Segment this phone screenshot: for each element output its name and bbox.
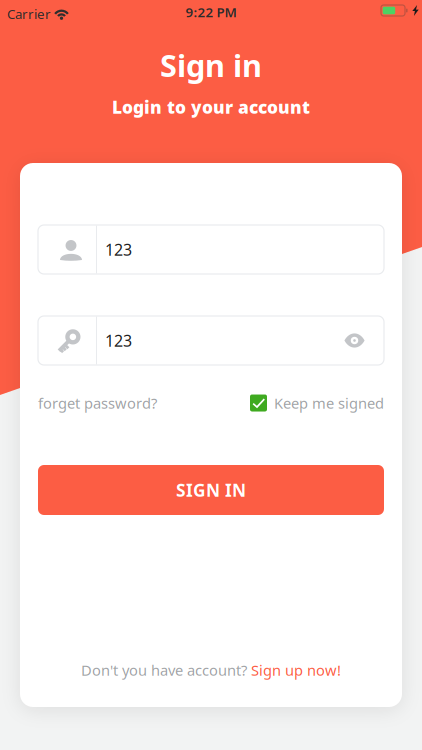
staticText: forget password? xyxy=(38,393,157,413)
staticText: Don't you have account? xyxy=(81,660,251,680)
staticText: Keep me signed xyxy=(274,393,384,413)
staticText: 123 xyxy=(105,330,132,351)
staticText: 9:22 PM xyxy=(185,3,236,21)
button[interactable]: Don't you have account? xyxy=(20,659,402,681)
staticText: SIGN IN xyxy=(176,478,246,501)
staticText: Carrier xyxy=(7,5,51,23)
staticText: Sign in xyxy=(160,45,262,85)
button[interactable]: forget password? xyxy=(38,393,157,413)
button[interactable]: SIGN IN xyxy=(38,465,384,515)
staticText: Login to your account xyxy=(112,95,310,118)
button[interactable]: Keep me signed xyxy=(250,393,384,413)
staticText: 123 xyxy=(105,239,132,260)
staticText: Sign up now! xyxy=(251,660,341,680)
